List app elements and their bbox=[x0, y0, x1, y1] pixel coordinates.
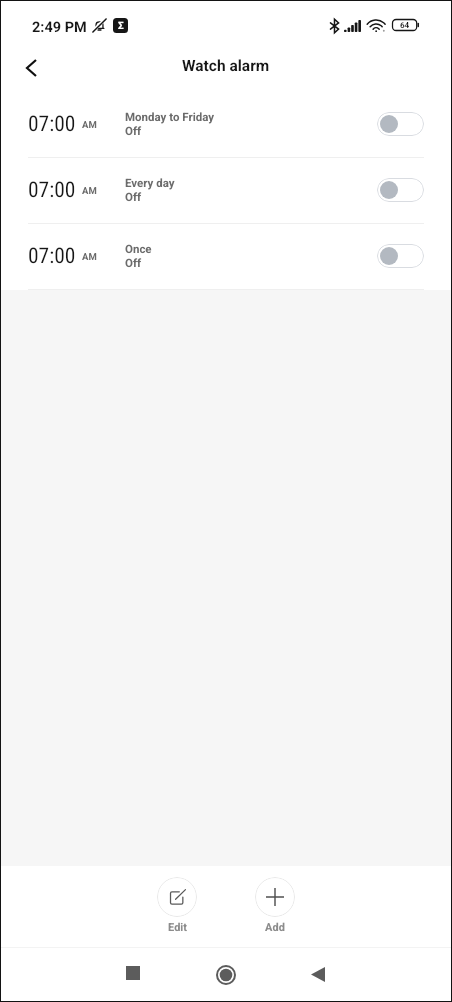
button[interactable]: Back bbox=[15, 52, 47, 84]
button[interactable]: Recent apps bbox=[113, 953, 153, 993]
button[interactable]: Edit bbox=[157, 877, 197, 934]
staticText: AM bbox=[82, 185, 97, 196]
button[interactable]: Back bbox=[298, 954, 338, 994]
staticText: Off bbox=[125, 124, 142, 137]
staticText: Edit bbox=[168, 921, 187, 934]
button[interactable]: Toggle alarm bbox=[377, 244, 424, 268]
staticText: 07:00 bbox=[28, 111, 76, 136]
staticText: Off bbox=[125, 190, 142, 203]
staticText: AM bbox=[82, 251, 97, 262]
staticText: 07:00 bbox=[28, 243, 76, 268]
staticText: Add bbox=[265, 921, 285, 934]
button[interactable]: 07:00 bbox=[0, 92, 452, 158]
staticText: 2:49 PM bbox=[32, 19, 87, 36]
button[interactable]: Home bbox=[206, 955, 246, 995]
staticText: Every day bbox=[125, 176, 175, 189]
staticText: AM bbox=[82, 119, 97, 130]
button[interactable]: 07:00 bbox=[0, 224, 452, 290]
button[interactable]: Add bbox=[255, 877, 295, 934]
button[interactable]: 07:00 bbox=[0, 158, 452, 224]
staticText: Monday to Friday bbox=[125, 110, 215, 123]
staticText: Σ bbox=[118, 20, 124, 32]
button[interactable]: Toggle alarm bbox=[377, 178, 424, 202]
staticText: Once bbox=[125, 242, 152, 255]
button[interactable]: Toggle alarm bbox=[377, 112, 424, 136]
staticText: Watch alarm bbox=[182, 57, 270, 75]
staticText: Off bbox=[125, 256, 142, 269]
staticText: 64 bbox=[400, 21, 410, 30]
staticText: 07:00 bbox=[28, 177, 76, 202]
